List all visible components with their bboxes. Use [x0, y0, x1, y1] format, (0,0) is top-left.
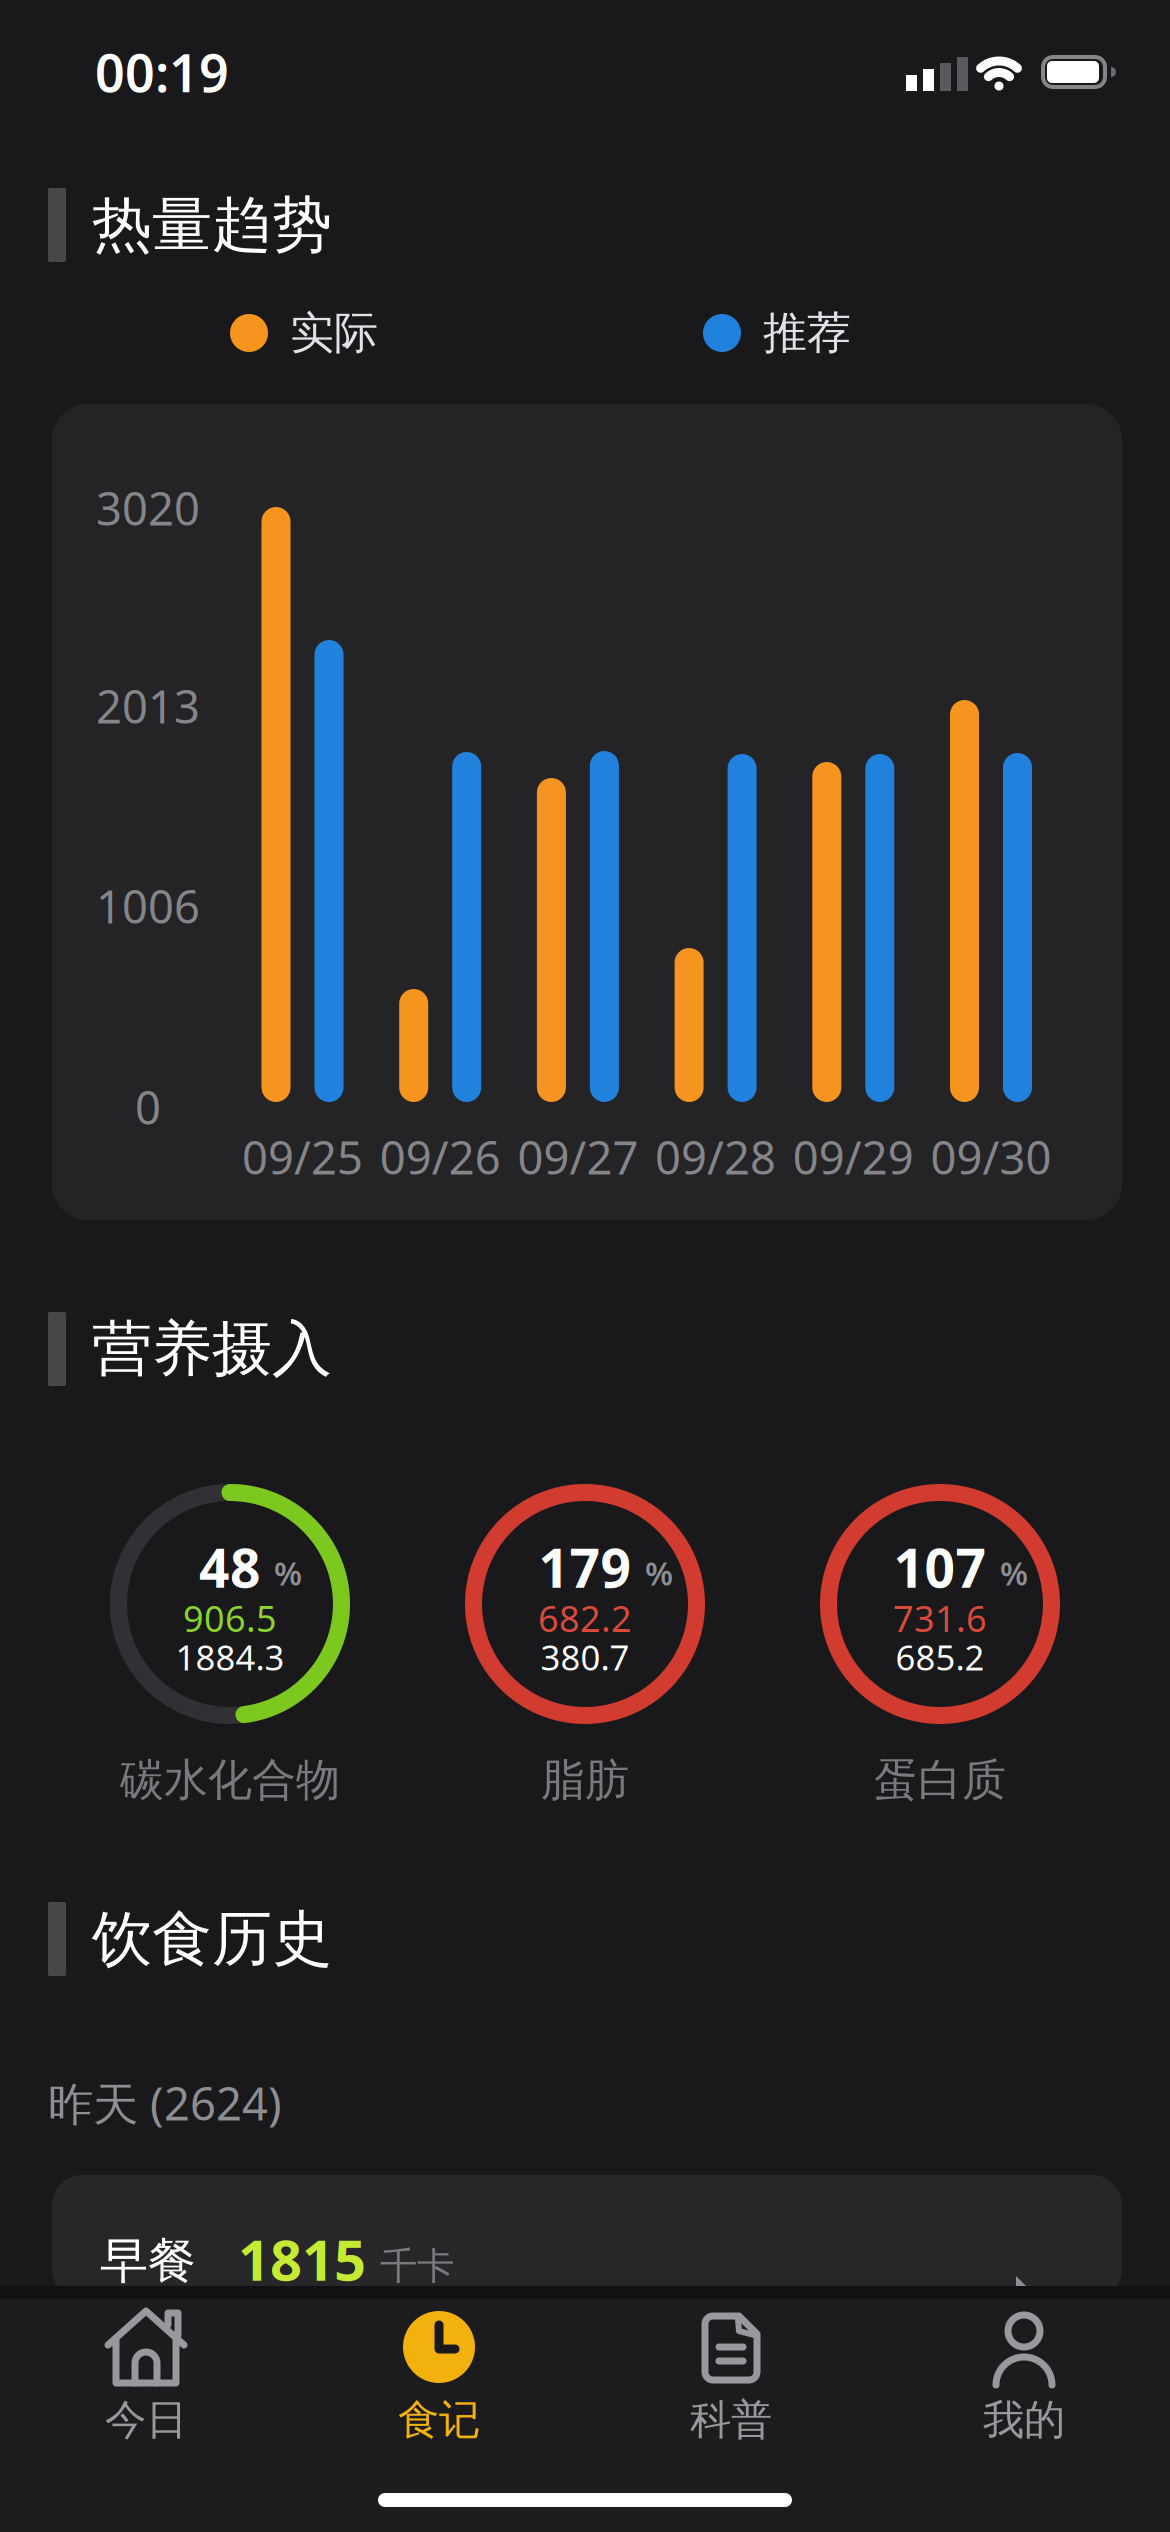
- staticText: 脂肪: [541, 1753, 629, 1807]
- staticText: 早餐: [100, 2231, 196, 2290]
- staticText: 碳水化合物: [120, 1753, 340, 1807]
- staticText: 731.6: [893, 1594, 987, 1642]
- staticText: 科普: [690, 2395, 772, 2445]
- button[interactable]: 食记: [292, 2299, 585, 2485]
- staticText: 1006: [96, 876, 200, 936]
- button[interactable]: 科普: [584, 2299, 877, 2485]
- staticText: 2013: [96, 676, 200, 736]
- button[interactable]: 我的: [877, 2299, 1170, 2485]
- staticText: 906.5: [183, 1594, 277, 1642]
- staticText: 热量趋势: [92, 188, 332, 262]
- staticText: 48: [199, 1532, 261, 1602]
- staticText: 1884.3: [175, 1634, 284, 1680]
- staticText: 09/25: [242, 1127, 363, 1187]
- staticText: 1815: [238, 2222, 366, 2296]
- staticText: 09/27: [517, 1127, 638, 1187]
- staticText: 3020: [96, 478, 200, 538]
- staticText: 我的: [983, 2395, 1065, 2445]
- button[interactable]: 早餐: [52, 2175, 1122, 2299]
- staticText: 179: [538, 1532, 631, 1602]
- staticText: %: [1000, 1552, 1028, 1594]
- staticText: 09/30: [930, 1127, 1051, 1187]
- button[interactable]: 今日: [0, 2299, 292, 2485]
- staticText: 685.2: [895, 1634, 984, 1680]
- staticText: 实际: [290, 306, 378, 360]
- staticText: %: [645, 1552, 673, 1594]
- staticText: 380.7: [540, 1634, 629, 1680]
- staticText: 09/28: [655, 1127, 776, 1187]
- staticText: 09/29: [793, 1127, 914, 1187]
- staticText: 千卡: [380, 2243, 454, 2289]
- staticText: 昨天 (2624): [48, 2073, 282, 2133]
- staticText: 蛋白质: [874, 1753, 1006, 1807]
- staticText: 饮食历史: [92, 1902, 332, 1976]
- staticText: 682.2: [538, 1594, 632, 1642]
- staticText: 00:19: [95, 37, 229, 107]
- staticText: 营养摄入: [92, 1312, 332, 1386]
- staticText: 推荐: [763, 306, 851, 360]
- staticText: %: [274, 1552, 302, 1594]
- staticText: 今日: [105, 2395, 187, 2445]
- staticText: 0: [135, 1077, 161, 1137]
- staticText: 107: [893, 1532, 986, 1602]
- staticText: 食记: [398, 2395, 480, 2445]
- staticText: 09/26: [380, 1127, 501, 1187]
